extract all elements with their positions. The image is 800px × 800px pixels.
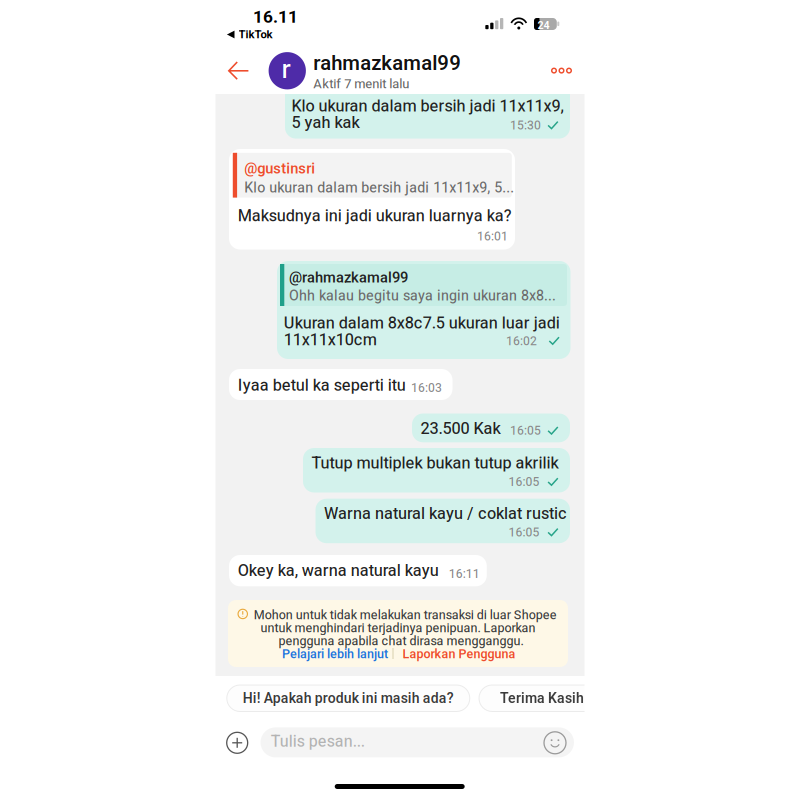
staticText: Okey ka, warna natural kayu [238,561,439,580]
staticText: TikTok [238,28,272,41]
button[interactable]: Laporkan Pengguna [402,647,515,661]
staticText: Warna natural kayu / coklat rustic [324,504,567,523]
staticText: Ukuran dalam 8x8c7.5 ukuran luar jadi [284,313,560,332]
staticText: 16:01 [477,229,508,243]
staticText: Aktif 7 menit lalu [313,76,409,91]
staticText: @rahmazkamal99 [289,269,408,286]
staticText: 5 yah kak [291,113,359,132]
staticText: Pelajari lebih lanjut [282,647,388,661]
staticText: @gustinsri [244,160,315,177]
staticText: 16:11 [449,567,480,581]
staticText: Ohh kalau begitu saya ingin ukuran 8x8..… [289,287,556,304]
staticText: Tulis pesan... [271,732,365,751]
staticText: r [281,53,290,85]
staticText: 23.500 Kak [421,419,501,438]
staticText: 15:30 [510,118,541,132]
staticText: untuk menghindari terjadinya penipuan. L… [260,621,535,635]
staticText: 16.11 [253,7,298,27]
staticText: Terima Kasih te [500,690,600,706]
staticText: Tutup multiplek bukan tutup akrilik [311,453,558,473]
staticText: Klo ukuran dalam bersih jadi 11x11x9, [291,96,563,115]
staticText: pengguna apabila chat dirasa mengganggu. [279,634,524,648]
button[interactable]: Terima Kasih te [479,685,621,711]
staticText: 16:05 [510,424,541,438]
staticText: 16:05 [508,525,539,539]
staticText: 16:05 [508,475,539,489]
staticText: Laporkan Pengguna [402,647,515,661]
staticText: 24 [537,19,549,31]
staticText: Maksudnya ini jadi ukuran luarnya ka? [238,206,512,225]
staticText: Hi! Apakah produk ini masih ada? [243,690,454,706]
staticText: 11x11x10cm [284,330,377,349]
staticText: rahmazkamal99 [313,51,461,75]
staticText: 16:03 [411,381,442,395]
staticText: Iyaa betul ka seperti itu [238,376,406,395]
button[interactable]: Hi! Apakah produk ini masih ada? [227,685,470,711]
button[interactable]: Pelajari lebih lanjut [282,647,388,661]
staticText: 16:02 [506,334,537,348]
staticText: Klo ukuran dalam bersih jadi 11x11x9, 5.… [244,179,514,196]
staticText: Mohon untuk tidak melakukan transaksi di… [254,608,557,622]
